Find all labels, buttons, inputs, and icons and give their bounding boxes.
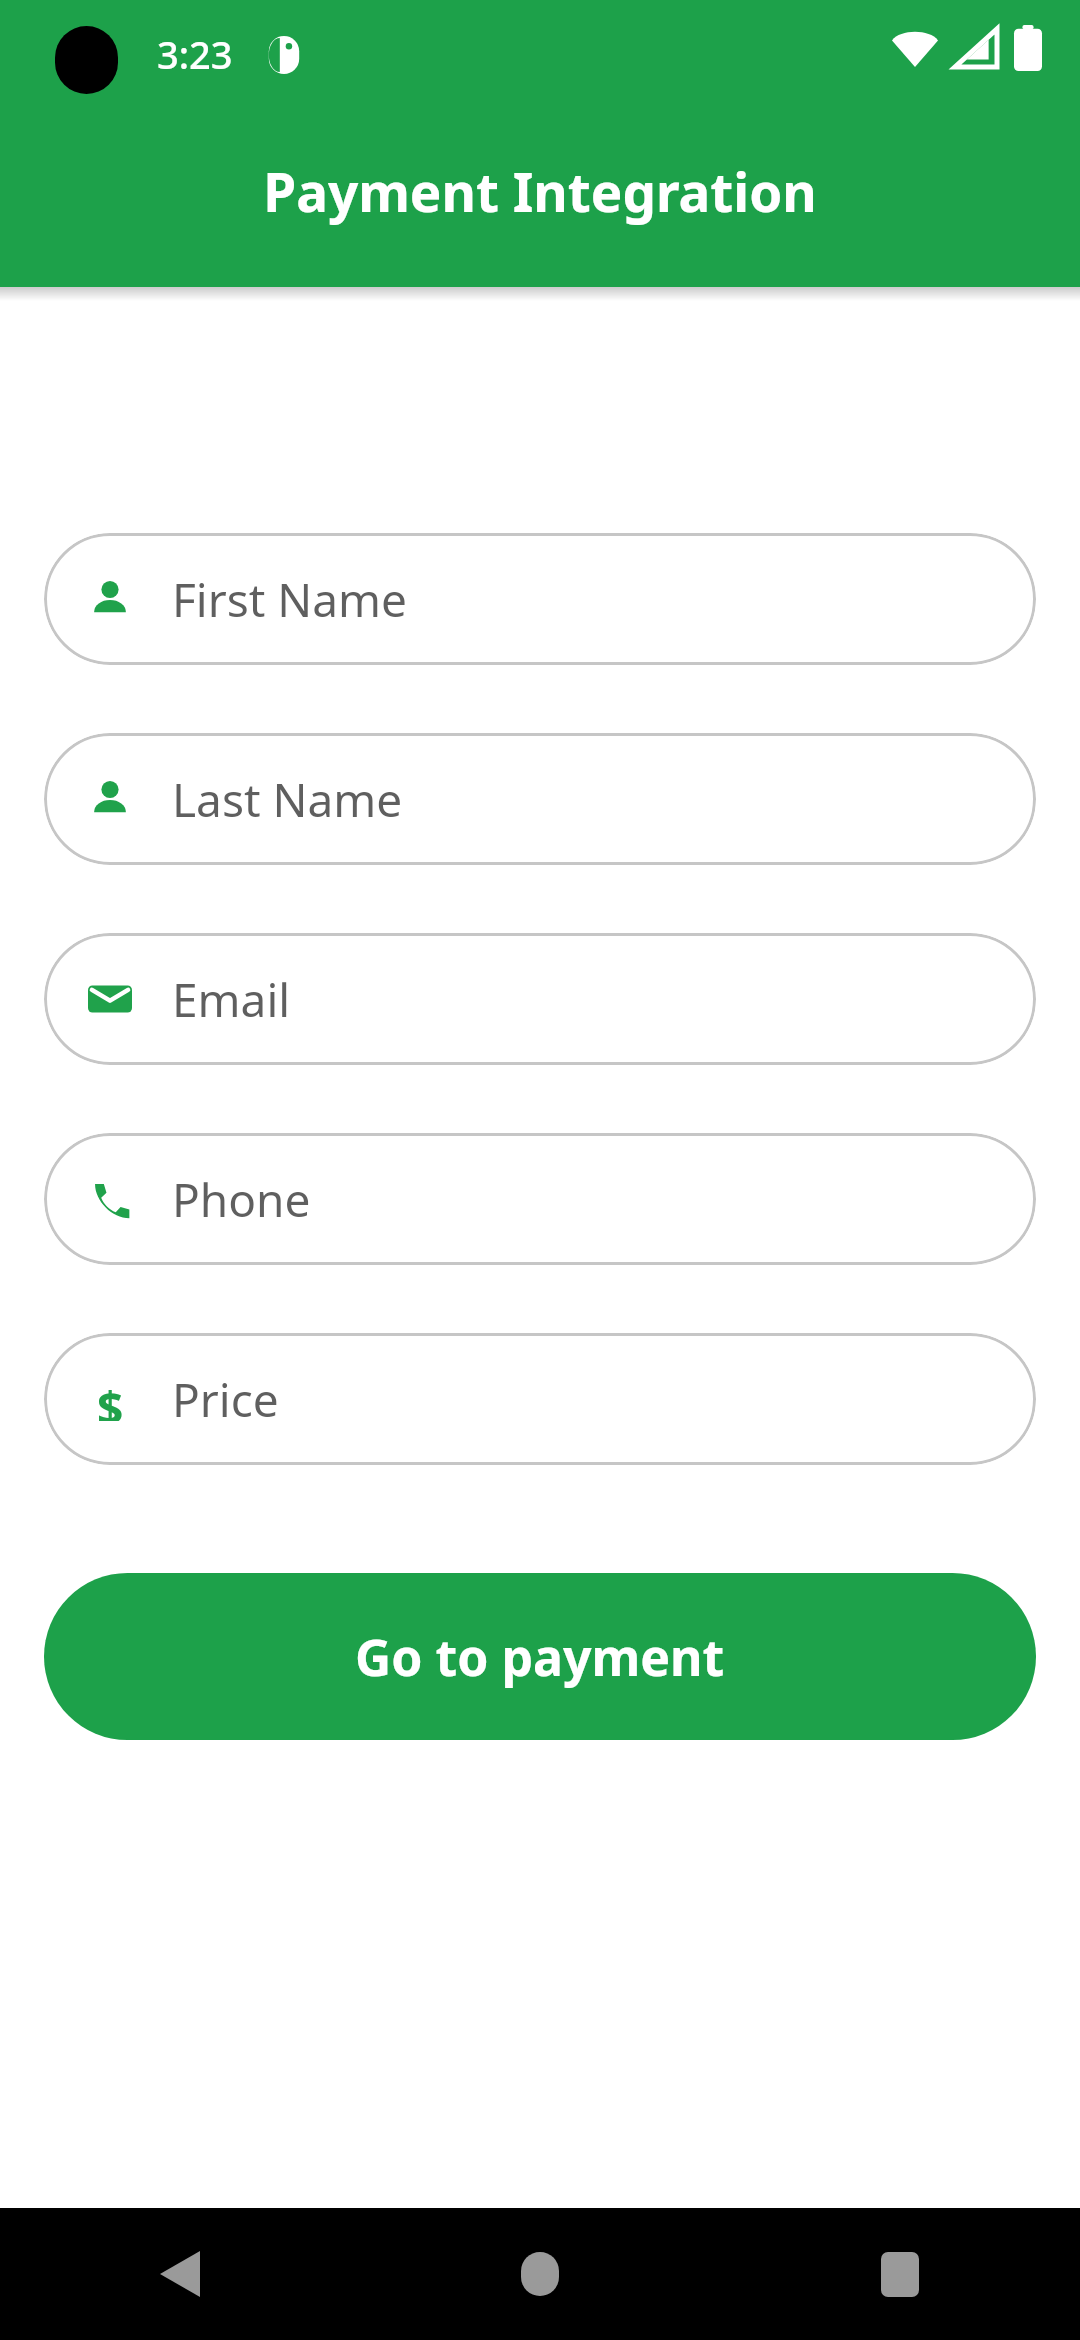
button[interactable]: $ <box>44 1333 1036 1465</box>
staticText: Price <box>172 1368 279 1431</box>
staticText: Last Name <box>172 768 403 831</box>
staticText: First Name <box>172 568 408 631</box>
button[interactable]: Recent apps <box>720 2208 1080 2340</box>
staticText: Email <box>172 968 291 1031</box>
button[interactable]: Home <box>360 2208 720 2340</box>
staticText: $ <box>97 1377 124 1421</box>
staticText: Go to payment <box>355 1623 725 1691</box>
button[interactable]: Go to payment <box>44 1573 1036 1740</box>
button[interactable]: Email <box>44 933 1036 1065</box>
button[interactable]: Last Name <box>44 733 1036 865</box>
button[interactable]: First Name <box>44 533 1036 665</box>
staticText: 3:23 <box>157 28 233 80</box>
button[interactable]: Back <box>0 2208 360 2340</box>
staticText: Payment Integration <box>263 155 817 227</box>
staticText: Phone <box>172 1168 311 1231</box>
button[interactable]: Phone <box>44 1133 1036 1265</box>
